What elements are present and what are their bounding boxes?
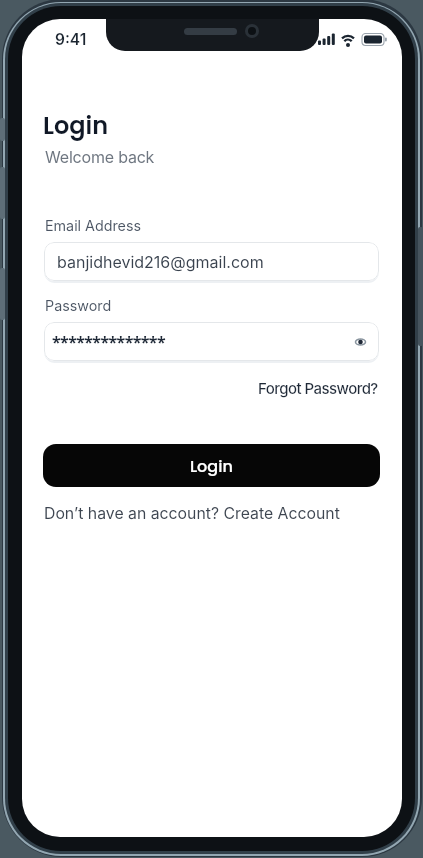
staticText: 9:41 (55, 30, 87, 49)
button[interactable]: banjidhevid216@gmail.com (44, 242, 379, 281)
button[interactable]: Don’t have an account? Create Account (44, 504, 340, 523)
button[interactable]: ************** (44, 322, 379, 361)
button[interactable]: Forgot Password? (258, 379, 378, 397)
staticText: banjidhevid216@gmail.com (57, 252, 264, 271)
button[interactable]: Login (43, 444, 380, 487)
staticText: Welcome back (45, 147, 155, 166)
staticText: Login (43, 109, 109, 143)
staticText: ************** (52, 331, 166, 353)
staticText: Email Address (45, 217, 142, 234)
staticText: Login (190, 455, 233, 477)
staticText: Password (45, 297, 112, 314)
